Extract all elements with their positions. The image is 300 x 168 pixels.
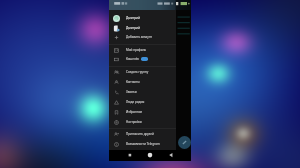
- staticText: Дмитрий: [126, 16, 141, 20]
- button[interactable]: Контакты: [109, 77, 176, 87]
- button[interactable]: Дмитрий: [109, 23, 176, 33]
- button[interactable]: Пригласить друзей: [109, 129, 176, 139]
- staticText: Звонки: [126, 90, 137, 94]
- button[interactable]: Мой профиль: [109, 45, 176, 55]
- button[interactable]: Настройки: [109, 117, 176, 127]
- staticText: Создать группу: [126, 70, 149, 74]
- staticText: Люди рядом: [126, 100, 145, 104]
- staticText: Контакты: [126, 80, 140, 84]
- button[interactable]: Звонки: [109, 87, 176, 97]
- staticText: Настройки: [126, 120, 142, 124]
- button[interactable]: Создать группу: [109, 67, 176, 77]
- staticText: Кошелёк: [126, 57, 139, 61]
- staticText: Избранное: [126, 110, 143, 114]
- button[interactable]: Добавить аккаунт: [109, 32, 176, 42]
- button[interactable]: New message: [178, 136, 191, 149]
- staticText: Мой профиль: [126, 48, 147, 52]
- button[interactable]: Кошелёк: [109, 54, 176, 64]
- staticText: Дмитрий: [126, 26, 141, 30]
- button[interactable]: Дмитрий: [109, 13, 176, 23]
- staticText: Возможности Telegram: [126, 142, 160, 146]
- button[interactable]: Возможности Telegram: [109, 139, 176, 149]
- button[interactable]: Люди рядом: [109, 97, 176, 107]
- button[interactable]: Избранное: [109, 107, 176, 117]
- staticText: Добавить аккаунт: [126, 35, 152, 39]
- staticText: Пригласить друзей: [126, 132, 154, 136]
